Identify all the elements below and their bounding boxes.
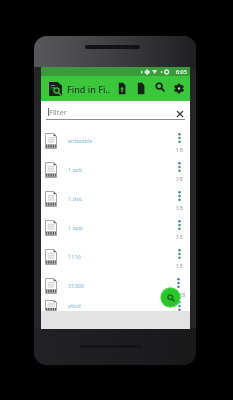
staticText: 1.apk — [68, 166, 83, 174]
button[interactable]: 1110 — [41, 242, 190, 271]
button[interactable]: App logo — [48, 76, 62, 101]
button[interactable]: 1.doc — [41, 184, 190, 213]
button[interactable]: writeable — [41, 126, 190, 155]
staticText: Find in Fi.. — [67, 83, 111, 95]
staticText: 1.app — [68, 224, 83, 232]
staticText: Filter — [49, 107, 67, 117]
staticText: 3 B — [176, 205, 183, 211]
button[interactable]: More options — [172, 129, 186, 147]
staticText: 3 B — [176, 234, 183, 240]
button[interactable]: 31306 — [41, 271, 190, 300]
button[interactable]: abcd — [41, 300, 190, 311]
button[interactable]: Search — [150, 76, 169, 101]
button[interactable]: Search — [160, 287, 181, 308]
staticText: 3 B — [176, 263, 183, 269]
staticText: 6:05 — [176, 68, 187, 75]
button[interactable]: More options — [171, 274, 185, 292]
staticText: 1110 — [68, 253, 81, 261]
staticText: 31306 — [68, 282, 84, 290]
staticText: 1 B — [176, 147, 183, 153]
button[interactable]: New file — [131, 76, 150, 101]
button[interactable]: Clear filter — [173, 107, 186, 120]
button[interactable]: More options — [172, 158, 186, 176]
button[interactable]: More options — [172, 245, 186, 263]
staticText: 10.8 KB — [169, 292, 186, 298]
staticText: abcd — [68, 302, 81, 310]
button[interactable]: 1.app — [41, 213, 190, 242]
staticText: 1.doc — [68, 195, 83, 203]
staticText: writeable — [68, 137, 93, 145]
staticText: 3 B — [176, 176, 183, 182]
button[interactable]: More options — [172, 187, 186, 205]
button[interactable]: More options — [172, 300, 186, 311]
button[interactable]: More options — [172, 216, 186, 234]
button[interactable]: Settings — [169, 76, 188, 101]
button[interactable]: 1.apk — [41, 155, 190, 184]
button[interactable]: Open file — [112, 76, 131, 101]
